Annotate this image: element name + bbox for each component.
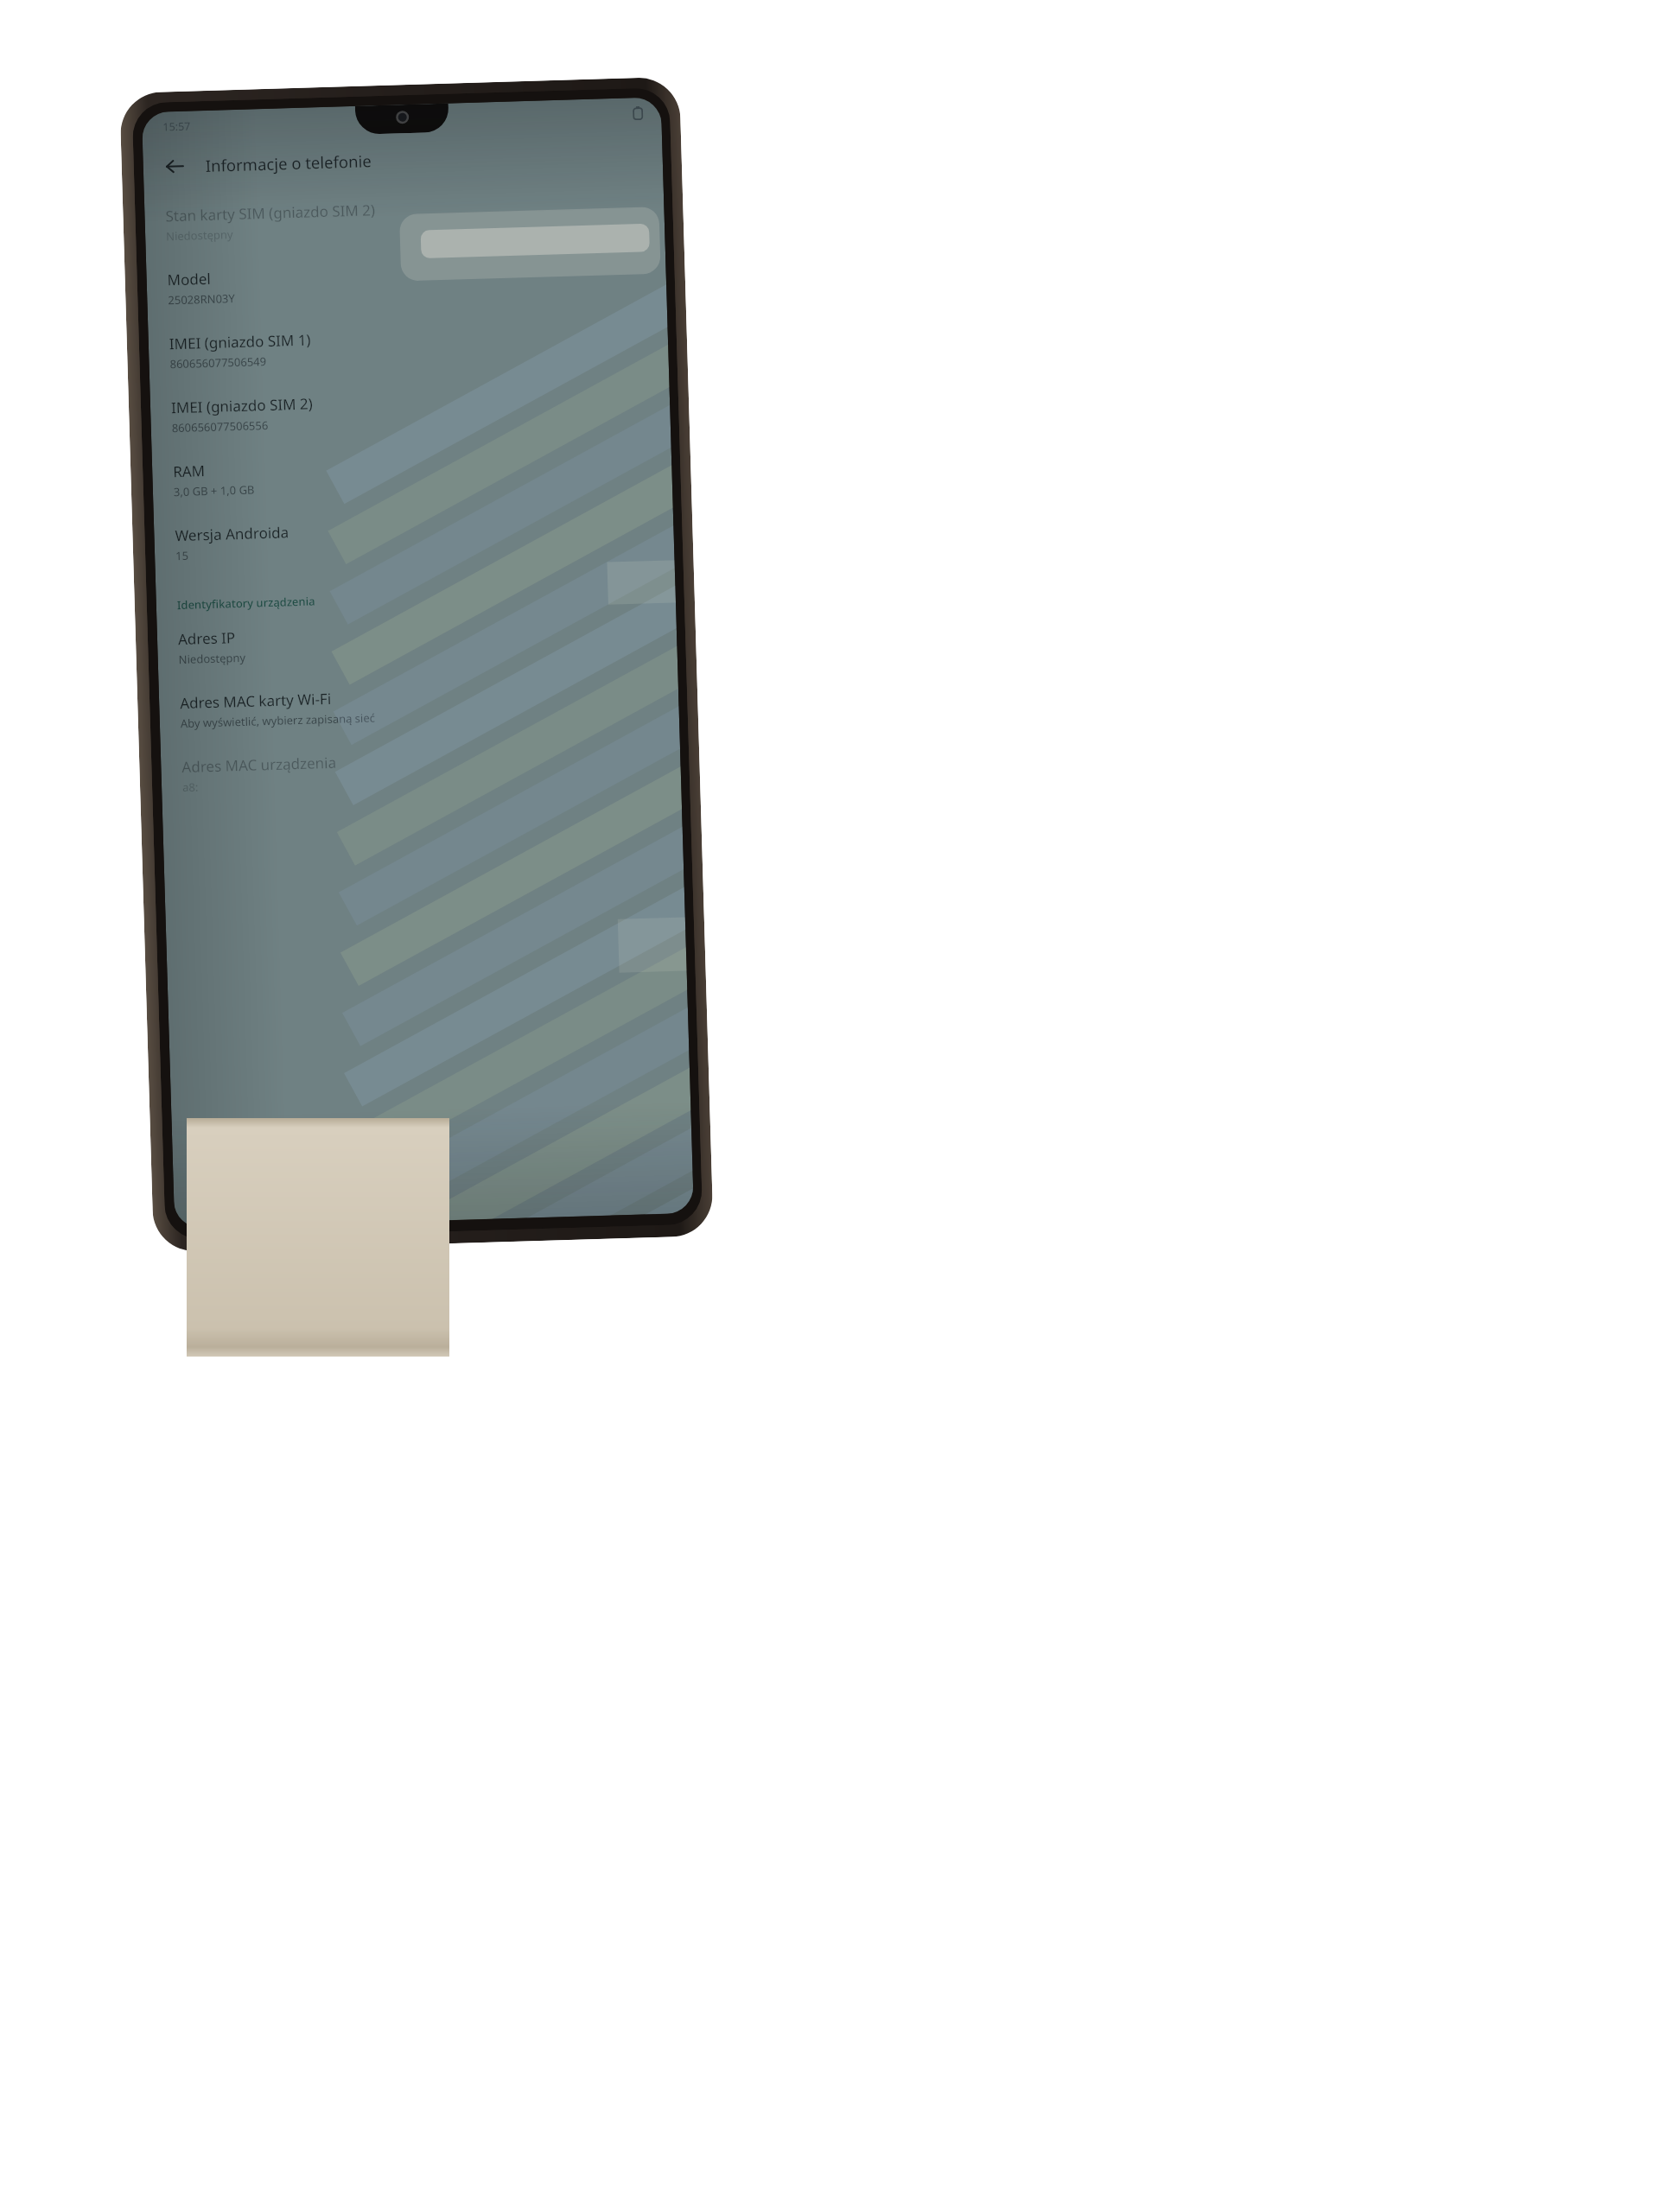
staticText: Adres IP xyxy=(178,627,236,649)
button[interactable]: Model xyxy=(146,242,667,322)
button[interactable]: Adres IP xyxy=(157,601,678,681)
button[interactable]: Adres MAC karty Wi-Fi xyxy=(158,665,679,745)
button[interactable]: IMEI (gniazdo SIM 1) xyxy=(148,306,669,385)
staticText: Stan karty SIM (gniazdo SIM 2) xyxy=(165,200,376,226)
button[interactable]: Wstecz xyxy=(155,146,194,186)
button[interactable]: RAM xyxy=(152,434,673,513)
staticText: Niedostępny xyxy=(178,650,246,667)
staticText: 15 xyxy=(175,548,189,564)
button[interactable]: Adres MAC urządzenia xyxy=(160,729,681,809)
button[interactable]: Stan karty SIM (gniazdo SIM 2) xyxy=(144,178,665,258)
staticText: Model xyxy=(167,269,212,290)
staticText: a8: xyxy=(182,779,199,795)
staticText: Wersja Androida xyxy=(175,522,289,545)
staticText: IMEI (gniazdo SIM 1) xyxy=(169,330,311,354)
staticText: 860656077506549 xyxy=(170,353,267,372)
staticText: Identyfikatory urządzenia xyxy=(177,593,316,613)
staticText: 15:57 xyxy=(163,119,191,134)
staticText: 3,0 GB + 1,0 GB xyxy=(173,482,255,500)
staticText: Adres MAC urządzenia xyxy=(182,752,337,777)
staticText: Aby wyświetlić, wybierz zapisaną sieć xyxy=(180,710,376,731)
staticText: RAM xyxy=(173,461,205,482)
button[interactable]: Wersja Androida xyxy=(154,498,675,577)
staticText: Informacje o telefonie xyxy=(205,150,372,176)
staticText: 25028RN03Y xyxy=(168,290,236,308)
staticText: 860656077506556 xyxy=(172,417,269,436)
staticText: IMEI (gniazdo SIM 2) xyxy=(171,393,313,418)
button[interactable]: IMEI (gniazdo SIM 2) xyxy=(150,370,671,449)
staticText: Adres MAC karty Wi-Fi xyxy=(180,689,331,713)
staticText: Niedostępny xyxy=(166,226,234,244)
